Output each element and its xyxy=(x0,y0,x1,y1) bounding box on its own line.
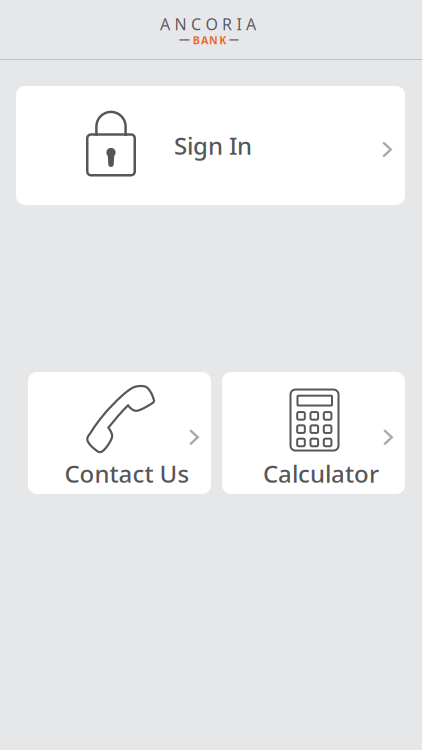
button[interactable]: Sign In xyxy=(16,86,405,205)
staticText: ANCORIA xyxy=(160,13,256,35)
staticText: BANK xyxy=(193,33,226,47)
button[interactable]: Contact Us xyxy=(28,372,211,494)
button[interactable]: Calculator xyxy=(222,372,405,494)
staticText: Calculator xyxy=(263,458,379,489)
staticText: Contact Us xyxy=(64,458,189,489)
staticText: Sign In xyxy=(174,130,252,161)
